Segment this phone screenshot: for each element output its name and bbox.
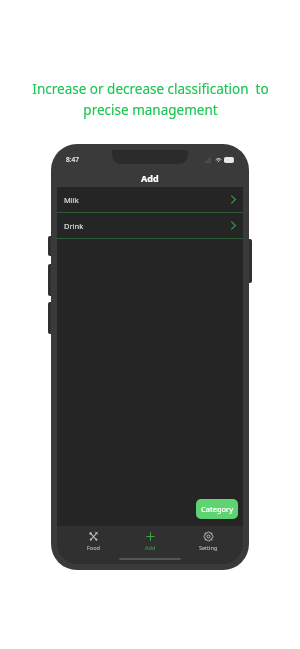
button[interactable]: Food <box>71 531 115 551</box>
button[interactable]: Add <box>128 531 172 551</box>
staticText: Add <box>145 544 156 551</box>
button[interactable]: Drink <box>57 213 243 239</box>
button[interactable]: Category <box>196 499 238 519</box>
other: Food <box>88 531 99 542</box>
other: Setting <box>203 531 214 542</box>
staticText: Add <box>141 172 159 184</box>
other: Add <box>145 531 156 542</box>
staticText: Milk <box>64 195 79 205</box>
button[interactable]: Setting <box>186 531 230 551</box>
staticText: precise management <box>83 101 218 119</box>
staticText: Increase or decrease classification to <box>32 80 269 98</box>
staticText: Drink <box>64 221 84 231</box>
staticText: Food <box>87 544 100 551</box>
button[interactable]: Milk <box>57 187 243 213</box>
staticText: Setting <box>199 544 218 551</box>
staticText: Category <box>201 504 233 514</box>
staticText: 8:47 <box>66 155 79 164</box>
